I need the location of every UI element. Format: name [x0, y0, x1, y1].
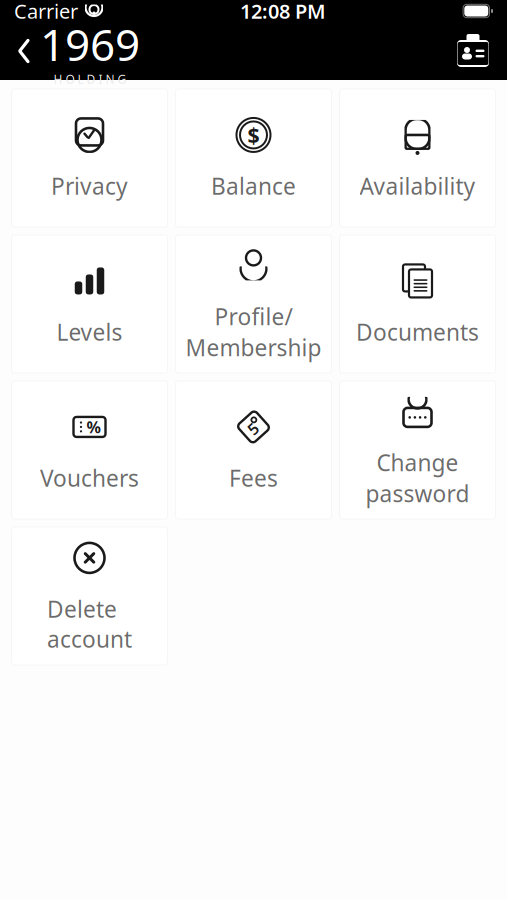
staticText: Levels	[56, 317, 122, 347]
staticText: %	[86, 416, 100, 437]
button[interactable]: Change	[339, 381, 495, 519]
button[interactable]: Privacy	[11, 89, 167, 227]
button[interactable]: %	[11, 381, 167, 519]
staticText: Change	[376, 447, 458, 477]
staticText: Membership	[185, 332, 321, 363]
button[interactable]: Back	[0, 9, 140, 93]
staticText: H O L D I N G	[53, 71, 126, 87]
button[interactable]: $	[175, 89, 331, 227]
staticText: Documents	[356, 317, 479, 347]
staticText: 1969	[40, 15, 140, 73]
button[interactable]: Delete account	[11, 527, 167, 665]
button[interactable]: Membership card	[439, 25, 507, 77]
button[interactable]: Availability	[339, 89, 495, 227]
staticText: Fees	[229, 463, 278, 493]
button[interactable]: 5	[175, 381, 331, 519]
staticText: 5	[247, 417, 256, 438]
staticText: Balance	[211, 171, 296, 201]
staticText: password	[365, 478, 469, 509]
staticText: 12:08 PM	[240, 0, 326, 24]
staticText: Availability	[359, 171, 475, 201]
staticText: Delete account	[47, 594, 132, 654]
button[interactable]: Documents	[339, 235, 495, 373]
button[interactable]: Profile/	[175, 235, 331, 373]
staticText: Carrier	[14, 0, 78, 24]
button[interactable]: Levels	[11, 235, 167, 373]
staticText: Privacy	[51, 171, 128, 201]
staticText: Profile/	[214, 301, 292, 331]
staticText: Vouchers	[40, 463, 139, 493]
staticText: $	[247, 121, 259, 149]
